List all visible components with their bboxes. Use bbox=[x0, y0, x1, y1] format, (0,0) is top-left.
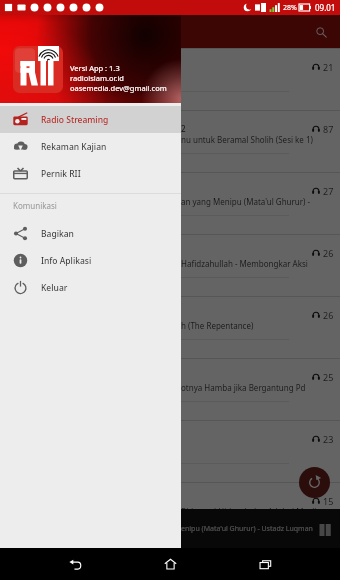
button[interactable]: 25 bbox=[0, 358, 340, 420]
staticText: Hafidzahullah - Membongkar Aksi bbox=[181, 258, 308, 269]
button[interactable]: Pause bbox=[314, 519, 336, 541]
staticText: an yang Menipu (Mata'ul Ghurur) - bbox=[181, 196, 311, 207]
button[interactable]: 87 bbox=[0, 110, 340, 172]
staticText: 26 bbox=[323, 309, 334, 321]
staticText: Info Aplikasi bbox=[41, 255, 92, 267]
staticText: 23 bbox=[323, 433, 334, 445]
staticText: Keluar bbox=[41, 282, 68, 294]
staticText: 15 bbox=[323, 495, 334, 507]
staticText: 87 bbox=[323, 123, 334, 135]
staticText: Bidayatul Hidayah dan Adabul Muslim bbox=[181, 506, 324, 517]
staticText: Versi App : 1.3 bbox=[70, 63, 120, 73]
button[interactable]: Home bbox=[150, 548, 190, 580]
staticText: oasemedia.dev@gmail.com bbox=[70, 83, 167, 93]
button[interactable]: 26 bbox=[0, 234, 340, 296]
staticText: enipu (Mata'ul Ghurur) - Ustadz Luqman bbox=[181, 524, 313, 534]
button[interactable]: Recents bbox=[245, 548, 285, 580]
button[interactable]: 23 bbox=[0, 420, 340, 482]
staticText: Pernik RII bbox=[41, 168, 81, 180]
button[interactable]: Keluar bbox=[0, 274, 181, 301]
staticText: otnya Hamba jika Bergantung Pd bbox=[181, 382, 306, 393]
button[interactable]: enipu (Mata'ul Ghurur) - Ustadz Luqman bbox=[0, 509, 340, 548]
staticText: Bagikan bbox=[41, 228, 74, 240]
button[interactable]: Rekaman Kajian bbox=[0, 133, 181, 160]
staticText: Radio Streaming bbox=[41, 114, 109, 126]
button[interactable]: 27 bbox=[0, 172, 340, 234]
staticText: 27 bbox=[323, 185, 334, 197]
button[interactable]: Radio Streaming bbox=[0, 106, 181, 133]
button[interactable]: 15 bbox=[0, 482, 340, 544]
button[interactable]: Info Aplikasi bbox=[0, 247, 181, 274]
button[interactable]: Refresh bbox=[299, 467, 330, 498]
button[interactable]: Search bbox=[309, 20, 333, 44]
staticText: 2 bbox=[181, 123, 186, 134]
button[interactable]: Pernik RII bbox=[0, 160, 181, 187]
staticText: 26 bbox=[323, 247, 334, 259]
staticText: h (The Repentance) bbox=[181, 320, 254, 331]
staticText: Komunikasi bbox=[13, 200, 57, 211]
staticText: 25 bbox=[323, 371, 334, 383]
button[interactable]: 21 bbox=[0, 48, 340, 110]
button[interactable]: Bagikan bbox=[0, 220, 181, 247]
button[interactable]: Back bbox=[55, 548, 95, 580]
staticText: 09.01 bbox=[315, 2, 336, 13]
staticText: 28% bbox=[283, 3, 297, 13]
button[interactable]: 26 bbox=[0, 296, 340, 358]
staticText: nu untuk Beramal Sholih (Sesi ke 1) bbox=[181, 134, 313, 145]
staticText: radioislam.or.id bbox=[70, 73, 124, 83]
staticText: 21 bbox=[323, 61, 334, 73]
staticText: Rekaman Kajian bbox=[41, 141, 107, 153]
